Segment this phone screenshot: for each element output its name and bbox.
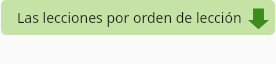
- staticText: Las lecciones por orden de lección: [17, 8, 242, 27]
- other: Ordenar descendente: [248, 6, 269, 30]
- button[interactable]: Las lecciones por orden de lección: [1, 0, 275, 35]
